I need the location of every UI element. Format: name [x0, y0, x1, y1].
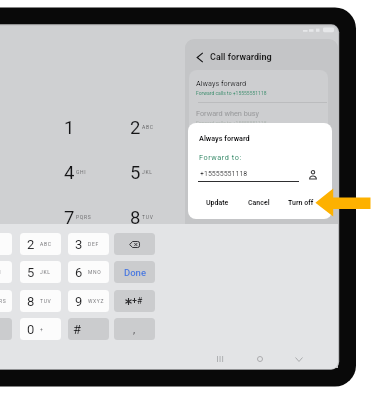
staticText: +15555551118	[200, 170, 248, 178]
staticText: 3	[75, 237, 83, 252]
button[interactable]: Choose contact	[305, 166, 321, 182]
staticText: +	[40, 326, 44, 332]
staticText: 2	[27, 237, 35, 252]
button[interactable]: 5	[20, 261, 61, 283]
staticText: ABC	[40, 241, 52, 247]
staticText: PQRS	[76, 214, 92, 220]
button[interactable]: 4	[0, 261, 12, 283]
staticText: 6	[75, 265, 83, 280]
button[interactable]: 8	[111, 204, 159, 232]
staticText: Forward to:	[199, 153, 242, 162]
staticText: TUV	[40, 298, 52, 304]
button[interactable]: Cancel	[243, 195, 275, 211]
staticText: 8	[130, 207, 141, 229]
staticText: GHI	[0, 269, 2, 275]
button[interactable]: 7	[0, 290, 12, 312]
staticText: Done	[124, 267, 146, 278]
button[interactable]: 5	[111, 159, 159, 187]
staticText: 8	[27, 294, 35, 309]
staticText: 4	[64, 162, 75, 184]
button[interactable]: Always forward	[196, 79, 267, 96]
staticText: JKL	[40, 269, 51, 275]
staticText: +#	[132, 296, 143, 307]
button[interactable]: Turn off	[283, 195, 319, 211]
button[interactable]: Backspace	[114, 233, 155, 255]
button[interactable]: Home	[249, 348, 271, 369]
staticText: PQRS	[0, 298, 7, 304]
staticText: JKL	[142, 169, 153, 175]
staticText: 2	[130, 117, 141, 139]
staticText: 1	[64, 117, 75, 139]
staticText: Forward calls to +15555551118	[196, 90, 267, 96]
button[interactable]: 9	[68, 290, 109, 312]
staticText: Forward when busy	[196, 109, 259, 118]
button[interactable]: 2	[20, 233, 61, 255]
button[interactable]: +#	[114, 290, 155, 312]
button[interactable]: Done	[114, 261, 155, 283]
staticText: Always forward	[199, 134, 250, 143]
staticText: 7	[64, 207, 75, 229]
button[interactable]: Recents	[209, 348, 231, 369]
button[interactable]: 0	[20, 318, 61, 340]
staticText: Cancel	[248, 199, 270, 207]
button[interactable]: #	[68, 318, 109, 340]
staticText: 0	[27, 322, 35, 337]
staticText: WXYZ	[88, 298, 105, 304]
staticText: Forward calls to +15555551118	[196, 120, 267, 126]
button[interactable]: 3	[68, 233, 109, 255]
staticText: Turn off	[288, 199, 314, 207]
staticText: MNO	[88, 269, 102, 275]
button[interactable]: Forward when busy	[196, 109, 267, 126]
button[interactable]: 2	[111, 114, 159, 142]
button[interactable]: Back	[288, 348, 310, 369]
button[interactable]: 7	[45, 204, 93, 232]
staticText: #	[73, 322, 82, 337]
staticText: Always forward	[196, 79, 247, 88]
staticText: TUV	[142, 214, 154, 220]
staticText: Update	[206, 199, 229, 207]
button[interactable]: 4	[45, 159, 93, 187]
button[interactable]: 1	[45, 114, 93, 142]
staticText: Call forwarding	[210, 52, 272, 63]
staticText: 5	[130, 162, 141, 184]
staticText: 9	[75, 294, 83, 309]
staticText: 5	[27, 265, 35, 280]
button[interactable]: Back	[190, 48, 209, 67]
button[interactable]: 8	[20, 290, 61, 312]
staticText: ABC	[142, 124, 154, 130]
button[interactable]: 6	[68, 261, 109, 283]
button[interactable]: Update	[201, 195, 234, 211]
staticText: DEF	[88, 241, 99, 247]
button[interactable]: ,	[114, 318, 155, 340]
staticText: ,	[133, 323, 136, 336]
staticText: GHI	[76, 169, 87, 175]
